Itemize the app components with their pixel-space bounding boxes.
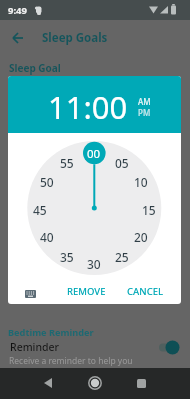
staticText: PM: [138, 107, 151, 118]
staticText: 11:00: [48, 86, 128, 128]
button[interactable]: [36, 371, 60, 395]
button[interactable]: AM: [129, 95, 159, 107]
button[interactable]: [156, 338, 182, 356]
button[interactable]: [8, 28, 28, 48]
staticText: 30: [87, 256, 101, 270]
staticText: 10: [134, 174, 148, 188]
staticText: AM: [138, 96, 151, 107]
button[interactable]: [0, 338, 190, 356]
staticText: 05: [115, 155, 129, 169]
staticText: 20: [134, 229, 148, 243]
staticText: REMOVE: [67, 285, 106, 298]
staticText: Receive a reminder to help you: [9, 355, 133, 367]
staticText: Bedtime Reminder: [8, 326, 94, 339]
staticText: 15: [142, 202, 156, 216]
button[interactable]: REMOVE: [58, 280, 114, 302]
staticText: 35: [60, 249, 74, 263]
staticText: CANCEL: [127, 285, 164, 298]
button[interactable]: [83, 371, 107, 395]
button[interactable]: PM: [129, 106, 159, 118]
button[interactable]: CANCEL: [119, 280, 171, 302]
staticText: 00: [87, 146, 101, 160]
staticText: Sleep Goals: [42, 30, 108, 46]
staticText: 25: [115, 249, 129, 263]
staticText: 45: [33, 202, 47, 216]
button[interactable]: [20, 286, 40, 302]
staticText: 9:49: [8, 4, 27, 17]
staticText: Sleep Goal: [9, 61, 61, 75]
staticText: 55: [60, 155, 74, 169]
staticText: 40: [40, 229, 54, 243]
staticText: 50: [40, 174, 54, 188]
button[interactable]: [129, 371, 153, 395]
staticText: Reminder: [10, 340, 60, 354]
